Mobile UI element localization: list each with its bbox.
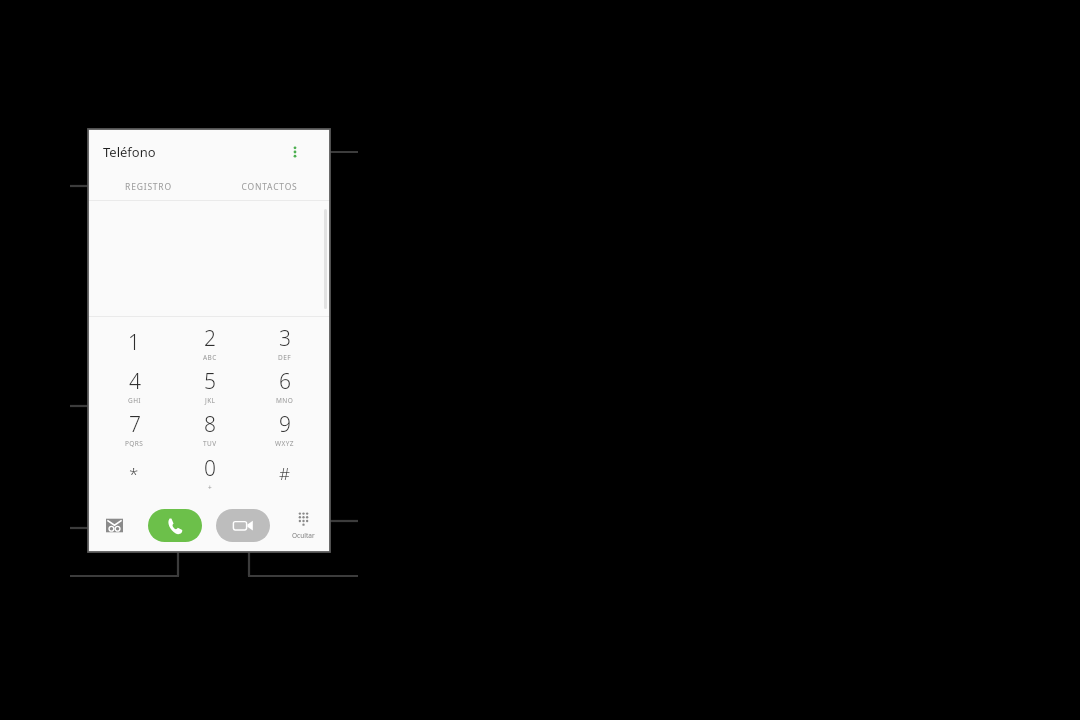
button[interactable]: # [247,451,322,495]
button[interactable]: 0 [172,451,247,495]
staticText: TUV [203,439,217,448]
staticText: 8 [204,410,216,439]
button[interactable]: More options [282,139,308,165]
button[interactable]: 4 [96,364,172,407]
staticText: Ocultar [292,531,315,540]
staticText: * [129,462,139,485]
button[interactable]: 8 [172,407,247,451]
button[interactable]: CONTACTOS [209,174,330,200]
staticText: 5 [204,367,216,396]
button[interactable]: * [96,451,172,495]
button[interactable]: REGISTRO [88,174,209,200]
button[interactable]: Voicemail [88,499,141,552]
staticText: 1 [128,328,140,357]
staticText: REGISTRO [125,181,172,193]
staticText: GHI [128,396,141,405]
button[interactable]: 2 [172,321,247,364]
button[interactable]: Call [148,509,202,542]
staticText: Teléfono [103,143,156,161]
staticText: 9 [279,410,291,439]
staticText: 4 [129,367,141,396]
button[interactable]: 3 [247,321,322,364]
button[interactable]: 5 [172,364,247,407]
staticText: + [208,483,213,492]
button[interactable]: 1 [96,321,172,364]
staticText: 7 [129,410,141,439]
button[interactable]: 7 [96,407,172,451]
staticText: 2 [204,324,216,353]
button[interactable]: 9 [247,407,322,451]
button[interactable]: Ocultar [277,499,330,552]
staticText: ABC [203,353,217,362]
staticText: 3 [279,324,291,353]
staticText: WXYZ [275,439,294,448]
staticText: DEF [278,353,291,362]
staticText: 6 [279,367,291,396]
staticText: CONTACTOS [241,181,298,193]
button[interactable]: 6 [247,364,322,407]
staticText: 0 [204,454,216,483]
button[interactable]: Video call [216,509,270,542]
staticText: JKL [205,396,216,405]
staticText: # [279,462,290,485]
staticText: PQRS [125,439,144,448]
staticText: MNO [276,396,294,405]
